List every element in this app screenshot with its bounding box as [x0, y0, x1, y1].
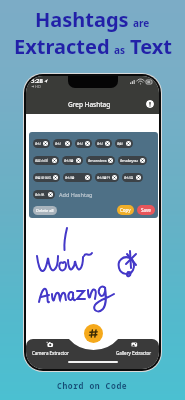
staticText: Save — [141, 207, 151, 213]
staticText: HD — [35, 84, 41, 89]
staticText: Text — [130, 33, 172, 60]
button[interactable]: #식물그램 — [62, 156, 83, 165]
staticText: Gallery Extractor — [116, 350, 152, 356]
button[interactable]: Extract hashtags — [84, 324, 103, 343]
button[interactable]: Save — [137, 205, 155, 215]
button[interactable]: #화분 — [115, 139, 133, 148]
staticText: as — [114, 43, 126, 57]
button[interactable]: #식집사 — [53, 139, 72, 148]
staticText: 5:28 — [31, 77, 43, 85]
button[interactable]: #식물 — [33, 139, 50, 148]
button[interactable]: #식물방 — [95, 139, 112, 148]
staticText: are — [133, 16, 150, 30]
button[interactable]: #필로덴드론 — [33, 173, 60, 182]
staticText: Camera Extractor — [32, 350, 69, 356]
button[interactable]: Info — [146, 100, 154, 108]
staticText: #식물_luvpost — [65, 175, 84, 180]
staticText: #식물집 — [77, 141, 84, 146]
staticText: #식물 — [35, 141, 42, 146]
staticText: #화분 — [117, 141, 125, 146]
staticText: Delete all — [36, 208, 54, 213]
staticText: #스투키 — [35, 192, 47, 197]
button[interactable]: Gallery Extractor — [109, 339, 159, 369]
staticText: #필로덴드론 — [35, 175, 52, 180]
staticText: #식물카페 — [97, 175, 111, 180]
staticText: #monstera — [88, 158, 107, 163]
staticText: Chord on Code — [57, 380, 128, 391]
button[interactable]: #몬스테라 — [33, 156, 59, 165]
staticText: #식물방 — [97, 141, 104, 146]
staticText: Add Hashtag — [59, 191, 93, 198]
staticText: #식집사 — [55, 141, 64, 146]
button[interactable]: #monstera — [86, 156, 115, 165]
button[interactable]: #식물집 — [75, 139, 92, 148]
staticText: Extracted — [14, 33, 110, 60]
staticText: Copy — [120, 207, 131, 213]
staticText: #makeyourdo — [120, 158, 139, 163]
button[interactable]: #식물_luvpost — [63, 173, 92, 182]
button[interactable]: Delete all — [33, 206, 57, 215]
staticText: #식집사 — [124, 175, 135, 180]
button[interactable]: #makeyourdo — [118, 156, 147, 165]
button[interactable]: #식집사 — [122, 173, 143, 182]
button[interactable]: Copy — [117, 205, 134, 215]
button[interactable]: #스투키 — [33, 190, 55, 199]
button[interactable]: #식물카페 — [95, 173, 119, 182]
staticText: #몬스테라 — [35, 158, 51, 163]
staticText: Grep Hashtag — [68, 100, 111, 109]
staticText: Hashtags — [35, 6, 129, 33]
staticText: #식물그램 — [64, 158, 75, 163]
button[interactable]: Camera Extractor — [26, 339, 75, 369]
